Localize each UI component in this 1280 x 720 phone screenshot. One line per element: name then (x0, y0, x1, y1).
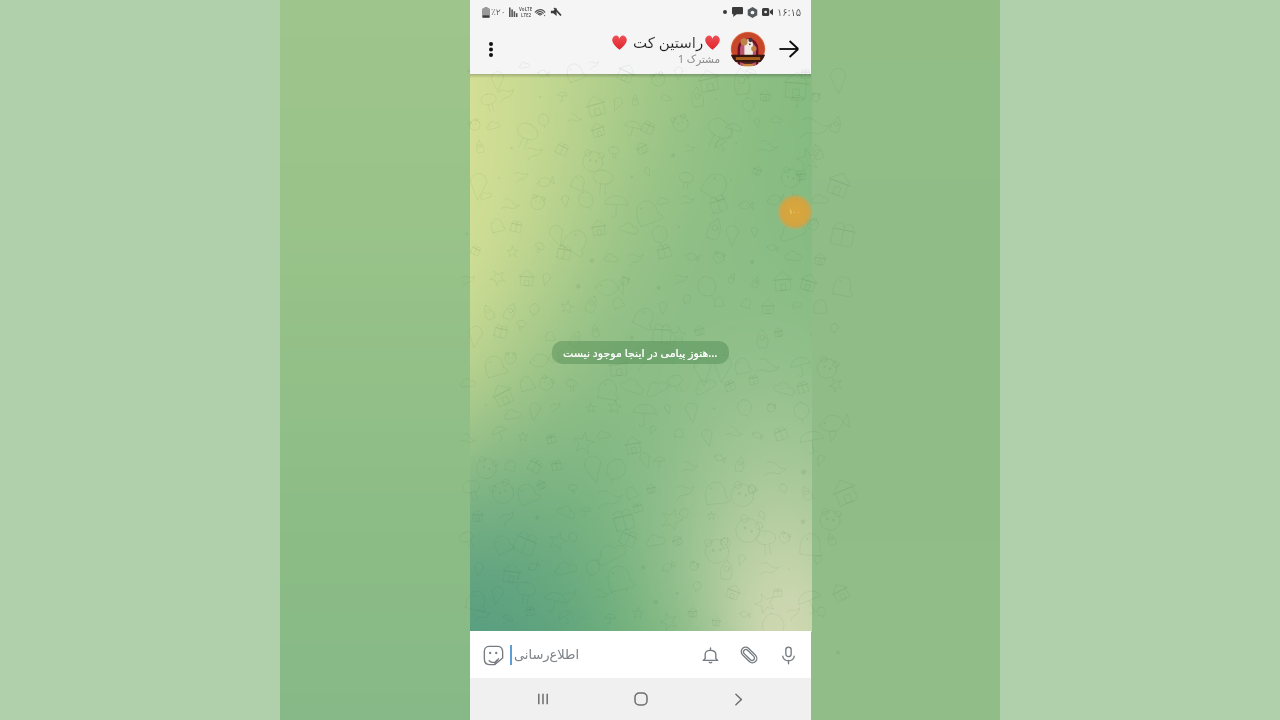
staticText: VoLTE (519, 6, 533, 12)
button[interactable] (730, 31, 766, 67)
button[interactable]: Home (617, 678, 665, 720)
staticText: ۱۶:۱۵ (777, 5, 802, 19)
button[interactable]: Voice message (772, 639, 804, 671)
button[interactable]: Emoji (477, 639, 509, 671)
button[interactable]: ۱۰۰ (777, 194, 813, 230)
staticText: LTE2 (521, 12, 532, 18)
staticText: ٪۲۰ (491, 7, 506, 17)
staticText: هنوز پیامی در اینجا موجود نیست... (563, 345, 718, 360)
button[interactable]: Notifications (694, 639, 726, 671)
button[interactable]: راستین کت (611, 32, 721, 66)
button[interactable]: Attach (733, 639, 765, 671)
button[interactable]: More options (470, 28, 512, 70)
staticText: ۱۰۰ (789, 208, 801, 216)
staticText: راستین کت (633, 32, 704, 52)
staticText: اطلاع‌رسانی (514, 647, 580, 662)
button[interactable]: هنوز پیامی در اینجا موجود نیست... (552, 341, 729, 364)
button[interactable]: Back (769, 29, 809, 69)
staticText: 1 مشترک (678, 52, 721, 66)
button[interactable]: Recents (519, 678, 567, 720)
button[interactable]: Back (714, 678, 762, 720)
